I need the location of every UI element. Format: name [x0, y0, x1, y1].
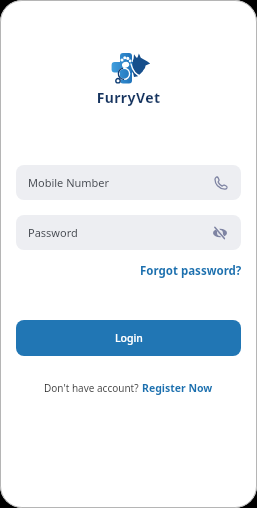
button[interactable]: Mobile Number: [16, 165, 241, 200]
staticText: Mobile Number: [28, 175, 110, 190]
button[interactable]: Login: [16, 320, 241, 356]
button[interactable]: Password: [16, 215, 241, 250]
staticText: Forgot password?: [140, 263, 242, 279]
button[interactable]: Don't have account?: [44, 381, 213, 395]
staticText: Don't have account?: [44, 381, 142, 395]
button[interactable]: Forgot password?: [140, 263, 242, 279]
staticText: Login: [115, 331, 143, 345]
staticText: FurryVet: [0, 88, 257, 107]
staticText: Register Now: [142, 381, 213, 395]
staticText: Password: [28, 225, 78, 240]
